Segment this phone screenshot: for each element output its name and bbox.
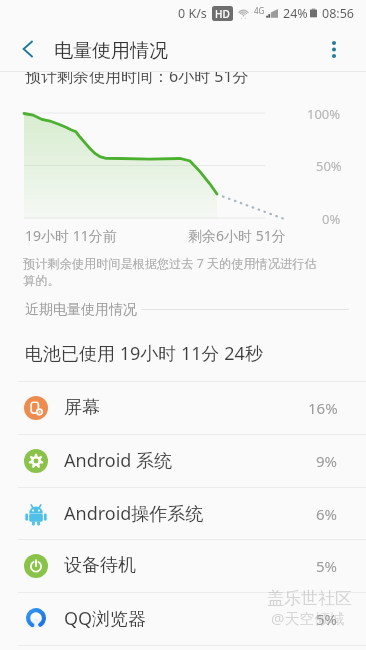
staticText: 电池已使用 19小时 11分 24秒	[25, 341, 263, 366]
staticText: 19小时 11分前	[25, 226, 117, 245]
button[interactable]: Android操作系统	[0, 487, 366, 540]
button[interactable]: More options	[302, 26, 366, 72]
staticText: Android操作系统	[64, 501, 204, 526]
staticText: 24%	[283, 5, 308, 22]
staticText: 4G	[254, 5, 265, 16]
staticText: 9%	[316, 451, 338, 471]
button[interactable]: 设备待机	[0, 539, 366, 592]
staticText: 5%	[316, 609, 338, 629]
staticText: QQ浏览器	[64, 606, 147, 631]
staticText: HD	[215, 7, 230, 21]
staticText: 屏幕	[64, 396, 100, 419]
staticText: 预计剩余使用时间是根据您过去 7 天的使用情况进行估算的。	[23, 255, 325, 289]
staticText: 16%	[308, 398, 338, 418]
staticText: 剩余6小时 51分	[188, 226, 286, 245]
button[interactable]: 屏幕	[0, 381, 366, 434]
staticText: 0 K/s	[178, 5, 207, 22]
button[interactable]: QQ浏览器	[0, 592, 366, 645]
staticText: 设备待机	[64, 554, 136, 577]
button[interactable]: Android 系统	[0, 434, 366, 487]
staticText: @天空倾城	[271, 608, 345, 628]
staticText: 6%	[316, 504, 338, 524]
staticText: 近期电量使用情况	[25, 301, 137, 319]
staticText: 08:56	[322, 5, 354, 22]
staticText: 0%	[322, 210, 341, 228]
staticText: Android 系统	[64, 448, 173, 473]
staticText: 盖乐世社区	[267, 588, 352, 609]
staticText: 预计剩余使用时间：6小时 51分	[25, 72, 249, 87]
staticText: 电量使用情况	[54, 39, 168, 63]
staticText: 5%	[316, 556, 338, 576]
button[interactable]: Back	[0, 26, 55, 72]
staticText: 100%	[307, 105, 341, 123]
staticText: 50%	[316, 157, 342, 175]
